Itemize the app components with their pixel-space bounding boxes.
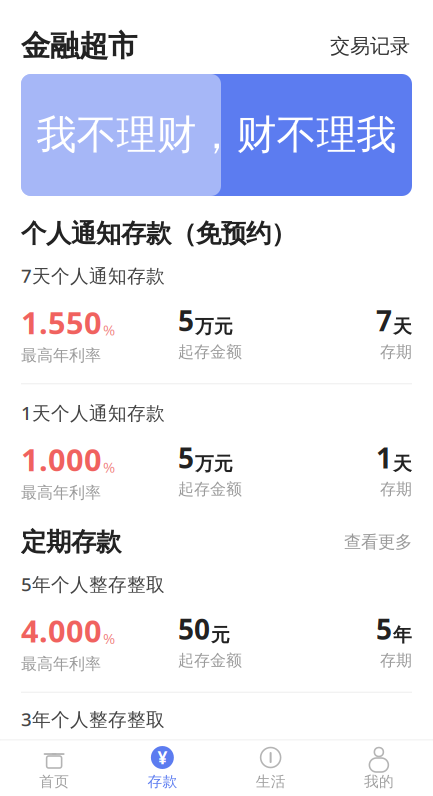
staticText: 我的	[364, 772, 394, 790]
staticText: 5	[376, 610, 392, 648]
staticText: %	[103, 457, 115, 477]
staticText: %	[103, 629, 115, 648]
staticText: 最高年利率	[21, 654, 101, 674]
staticText: 金融超市	[21, 28, 137, 64]
staticText: 5	[178, 439, 194, 476]
staticText: 个人通知存款（免预约）	[21, 218, 296, 249]
staticText: 交易记录	[330, 34, 410, 58]
staticText: ¥	[157, 746, 167, 769]
button[interactable]: 7天个人通知存款	[0, 261, 433, 367]
staticText: 天	[393, 315, 412, 338]
staticText: 7	[376, 302, 392, 339]
staticText: 年	[393, 624, 412, 646]
staticText: 起存金额	[178, 650, 242, 670]
staticText: 定期存款	[21, 526, 121, 558]
staticText: 7天个人通知存款	[21, 263, 165, 288]
staticText: 存款	[147, 772, 177, 790]
staticText: 5	[178, 302, 194, 339]
staticText: 生活	[256, 772, 286, 790]
staticText: 起存金额	[178, 479, 242, 499]
staticText: %	[103, 320, 115, 340]
staticText: 1	[376, 439, 392, 476]
button[interactable]: 存款	[108, 737, 216, 796]
staticText: 存期	[380, 650, 412, 670]
staticText: 1.000	[21, 439, 102, 480]
button[interactable]: 我不理财，财不理我	[21, 74, 412, 196]
staticText: 50	[178, 610, 210, 648]
button[interactable]: 交易记录	[328, 28, 412, 64]
staticText: 起存金额	[178, 342, 242, 362]
staticText: 万元	[195, 452, 233, 475]
staticText: 存期	[380, 479, 412, 499]
staticText: 4.000	[21, 610, 102, 651]
staticText: 最高年利率	[21, 483, 101, 502]
staticText: 元	[211, 624, 230, 646]
button[interactable]: 我的	[325, 737, 433, 796]
button[interactable]: 生活	[216, 737, 325, 796]
staticText: 1天个人通知存款	[21, 400, 165, 425]
staticText: 存期	[380, 342, 412, 362]
button[interactable]: 5年个人整存整取	[0, 570, 433, 676]
button[interactable]: 首页	[0, 737, 108, 796]
staticText: 5年个人整存整取	[21, 572, 165, 596]
staticText: 我不理财，财不理我	[36, 110, 396, 159]
button[interactable]: 查看更多	[344, 527, 412, 557]
staticText: 首页	[39, 772, 69, 790]
staticText: 查看更多	[344, 531, 412, 553]
staticText: 3年个人整存整取	[21, 707, 165, 731]
staticText: 最高年利率	[21, 346, 101, 365]
staticText: 天	[393, 452, 412, 475]
button[interactable]: 1天个人通知存款	[0, 398, 433, 504]
staticText: 1.550	[21, 302, 102, 343]
staticText: 万元	[195, 315, 233, 338]
